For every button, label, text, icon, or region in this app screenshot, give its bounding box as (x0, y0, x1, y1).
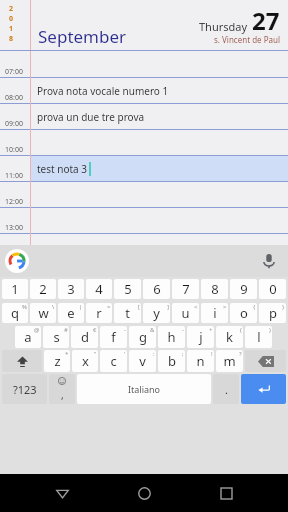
button[interactable]: Shift (2, 350, 42, 372)
staticText: 11:00 (5, 171, 23, 181)
button[interactable]: Voice input (258, 250, 280, 272)
staticText: & (150, 326, 155, 334)
button[interactable]: l (245, 326, 272, 348)
staticText: + (209, 326, 213, 334)
staticText: ' (124, 350, 126, 358)
staticText: e (67, 304, 75, 322)
button[interactable]: h (158, 326, 185, 348)
button[interactable]: u (172, 303, 199, 323)
staticText: 6 (153, 280, 161, 298)
staticText: 08:00 (5, 93, 23, 103)
button[interactable]: n (187, 350, 214, 372)
button[interactable]: g (129, 326, 156, 348)
button[interactable]: . (213, 374, 239, 404)
staticText: s. Vincent de Paul (214, 34, 280, 45)
button[interactable]: 09:00 (0, 104, 288, 130)
button[interactable]: 1 (2, 279, 28, 299)
staticText: ? (239, 350, 242, 358)
button[interactable]: 6 (143, 279, 170, 299)
staticText: s (53, 328, 60, 346)
button[interactable]: 0 (259, 279, 286, 299)
button[interactable]: Google (5, 249, 29, 273)
staticText: Prova nota vocale numero 1 (37, 84, 169, 98)
button[interactable]: e (58, 303, 84, 323)
staticText: u (181, 304, 190, 322)
staticText: % (22, 303, 27, 311)
staticText: " (94, 350, 97, 358)
button[interactable]: m (216, 350, 243, 372)
button[interactable]: 4 (86, 279, 112, 299)
staticText: [ (138, 303, 140, 311)
staticText: 12:00 (5, 197, 23, 207)
staticText: h (167, 328, 176, 346)
button[interactable]: k (216, 326, 243, 348)
button[interactable]: a (15, 326, 41, 348)
staticText: 1 (9, 24, 14, 34)
button[interactable]: t (114, 303, 141, 323)
button[interactable]: Backspace (245, 350, 286, 372)
button[interactable]: v (129, 350, 156, 372)
staticText: < (194, 303, 198, 311)
button[interactable]: Italiano (77, 374, 211, 404)
button[interactable]: Enter (241, 374, 286, 404)
button[interactable]: x (72, 350, 98, 372)
button[interactable]: 2 (30, 279, 56, 299)
button[interactable]: i (201, 303, 228, 323)
staticText: 13:00 (5, 223, 23, 233)
button[interactable]: 07:00 (0, 52, 288, 78)
button[interactable]: d (71, 326, 98, 348)
staticText: 1 (11, 280, 19, 298)
staticText: x (82, 352, 89, 370)
button[interactable]: 11:00 (0, 156, 288, 182)
button[interactable]: 12:00 (0, 182, 288, 208)
staticText: q (11, 304, 19, 322)
button[interactable]: 3 (58, 279, 84, 299)
button[interactable]: y (143, 303, 170, 323)
staticText: c (110, 352, 117, 370)
button[interactable]: 9 (230, 279, 257, 299)
button[interactable]: Home (124, 474, 164, 512)
button[interactable]: r (86, 303, 112, 323)
button[interactable]: 08:00 (0, 78, 288, 104)
button[interactable]: 10:00 (0, 130, 288, 156)
staticText: 07:00 (5, 67, 23, 77)
staticText: Thursday (199, 19, 248, 34)
staticText: g (139, 328, 147, 346)
staticText: > (223, 303, 227, 311)
button[interactable]: Back (42, 474, 82, 512)
button[interactable]: 13:00 (0, 208, 288, 234)
staticText: w (38, 304, 49, 322)
button[interactable]: Emoji and comma (49, 374, 75, 404)
button[interactable]: 5 (114, 279, 141, 299)
button[interactable]: 8 (201, 279, 228, 299)
staticText: f (111, 328, 116, 346)
staticText: b (168, 352, 176, 370)
button[interactable]: p (259, 303, 286, 323)
button[interactable]: 7 (172, 279, 199, 299)
button[interactable]: q (2, 303, 28, 323)
staticText: l (257, 328, 261, 346)
staticText: \ (52, 303, 55, 311)
staticText: € (93, 326, 97, 334)
button[interactable]: w (30, 303, 56, 323)
staticText: ( (240, 326, 242, 334)
staticText: m (223, 352, 236, 370)
button[interactable]: b (158, 350, 185, 372)
staticText: p (269, 304, 277, 322)
button[interactable]: z (44, 350, 70, 372)
staticText: test nota 3 (37, 162, 88, 176)
button[interactable]: j (187, 326, 214, 348)
staticText: t (125, 304, 130, 322)
staticText: a (24, 328, 32, 346)
button[interactable]: ?123 (2, 374, 47, 404)
staticText: @ (34, 326, 40, 334)
staticText: 0 (9, 14, 14, 24)
button[interactable]: c (100, 350, 127, 372)
button[interactable]: s (43, 326, 69, 348)
staticText: * (65, 350, 69, 358)
button[interactable]: f (100, 326, 127, 348)
button[interactable]: Recents (206, 474, 246, 512)
staticText: k (226, 328, 233, 346)
button[interactable]: o (230, 303, 257, 323)
staticText: - (182, 326, 184, 334)
